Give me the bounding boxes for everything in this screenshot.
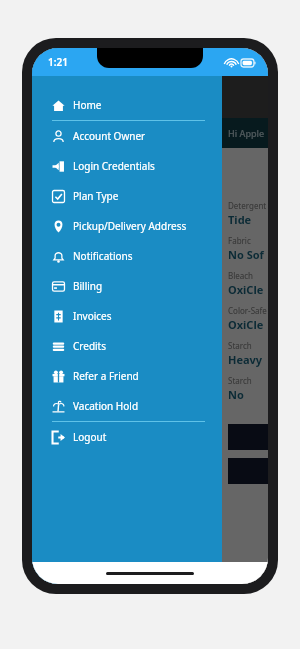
button[interactable]: Notifications [32,241,222,271]
button[interactable]: Refer a Friend [32,361,222,391]
staticText: No Starch [228,387,268,402]
staticText: Notifications [73,249,133,263]
staticText: Pickup/Delivery Address [73,219,187,233]
staticText: Home [73,98,102,112]
staticText: Starch [228,340,252,351]
staticText: Tide [228,212,252,227]
staticText: Color-Safe [228,305,267,316]
staticText: OxiClean [228,317,268,332]
staticText: 1:21 [48,55,68,69]
staticText: Bleach [228,270,254,281]
staticText: Account Owner [73,129,146,143]
staticText: Refer a Friend [73,369,139,383]
staticText: Vacation Hold [73,399,139,413]
button[interactable]: Login Credentials [32,151,222,181]
button[interactable]: Pickup/Delivery Address [32,211,222,241]
staticText: No Softener [228,247,268,262]
staticText: Login Credentials [73,159,155,173]
staticText: Credits [73,339,107,353]
button[interactable]: Invoices [32,301,222,331]
button[interactable]: Plan Type [32,181,222,211]
button[interactable]: Vacation Hold [32,391,222,421]
staticText: Heavy [228,352,263,367]
staticText: Detergent [228,200,267,211]
button[interactable]: Home [32,90,222,120]
staticText: Fabric Softener [228,235,268,246]
staticText: Plan Type [73,189,119,203]
button[interactable]: Account Owner [32,121,222,151]
button[interactable]: Billing [32,271,222,301]
button[interactable]: Credits [32,331,222,361]
staticText: Logout [73,430,107,444]
staticText: Starch Shirts [228,375,268,386]
staticText: Billing [73,279,103,293]
staticText: Invoices [73,309,112,323]
button[interactable]: Logout [32,422,222,452]
staticText: Hi Apple [228,127,265,139]
staticText: OxiClean [228,282,268,297]
